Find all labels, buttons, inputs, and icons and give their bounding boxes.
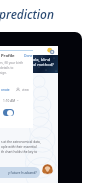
button[interactable]: Toggle setting — [3, 109, 14, 116]
button[interactable]: y future husband? — [0, 167, 40, 178]
button[interactable]: Profile picture — [42, 164, 53, 175]
button[interactable]: onate — [1, 88, 10, 92]
staticText: ala, blind al method? — [33, 57, 54, 67]
staticText: onate — [1, 88, 10, 92]
staticText: prediction — [0, 6, 54, 22]
button[interactable]: Done — [24, 53, 33, 58]
button[interactable]: Profile — [0, 47, 33, 128]
staticText: rs, fill your birth details to sign. — [0, 61, 33, 75]
staticText: y future husband? — [8, 170, 37, 175]
staticText: view — [22, 88, 29, 92]
staticText: Done — [24, 53, 33, 58]
staticText: s at the astronomical data, ople with th… — [1, 140, 41, 154]
staticText: Profile — [1, 53, 15, 59]
staticText: 1:10 AM ~ — [3, 99, 19, 103]
